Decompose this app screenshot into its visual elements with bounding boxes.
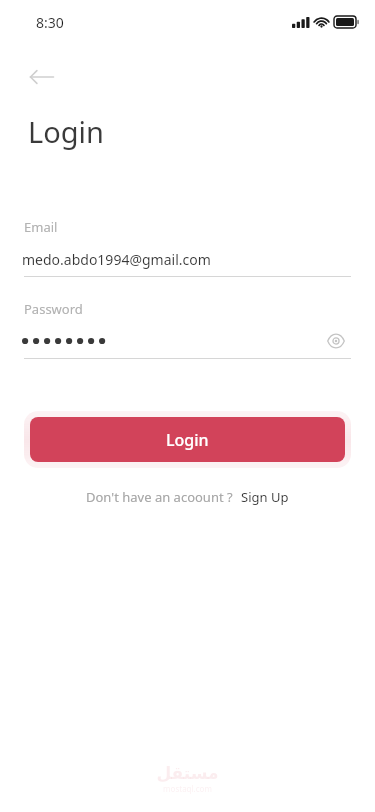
staticText: Email	[24, 218, 58, 236]
staticText: Don't have an acoount ?	[86, 488, 233, 506]
staticText: medo.abdo1994@gmail.com	[22, 250, 211, 269]
staticText: Sign Up	[241, 488, 289, 506]
staticText: Password	[24, 300, 83, 318]
staticText: mostaql.com	[163, 783, 212, 794]
button[interactable]: Sign Up	[241, 486, 289, 508]
staticText: Login	[28, 112, 104, 151]
button[interactable]: Show password	[321, 331, 351, 351]
button[interactable]: Login	[30, 417, 345, 462]
staticText: Login	[166, 429, 209, 451]
staticText: 8:30	[36, 13, 64, 32]
button[interactable]: Back	[22, 57, 62, 97]
staticText: مستقل	[156, 763, 219, 783]
